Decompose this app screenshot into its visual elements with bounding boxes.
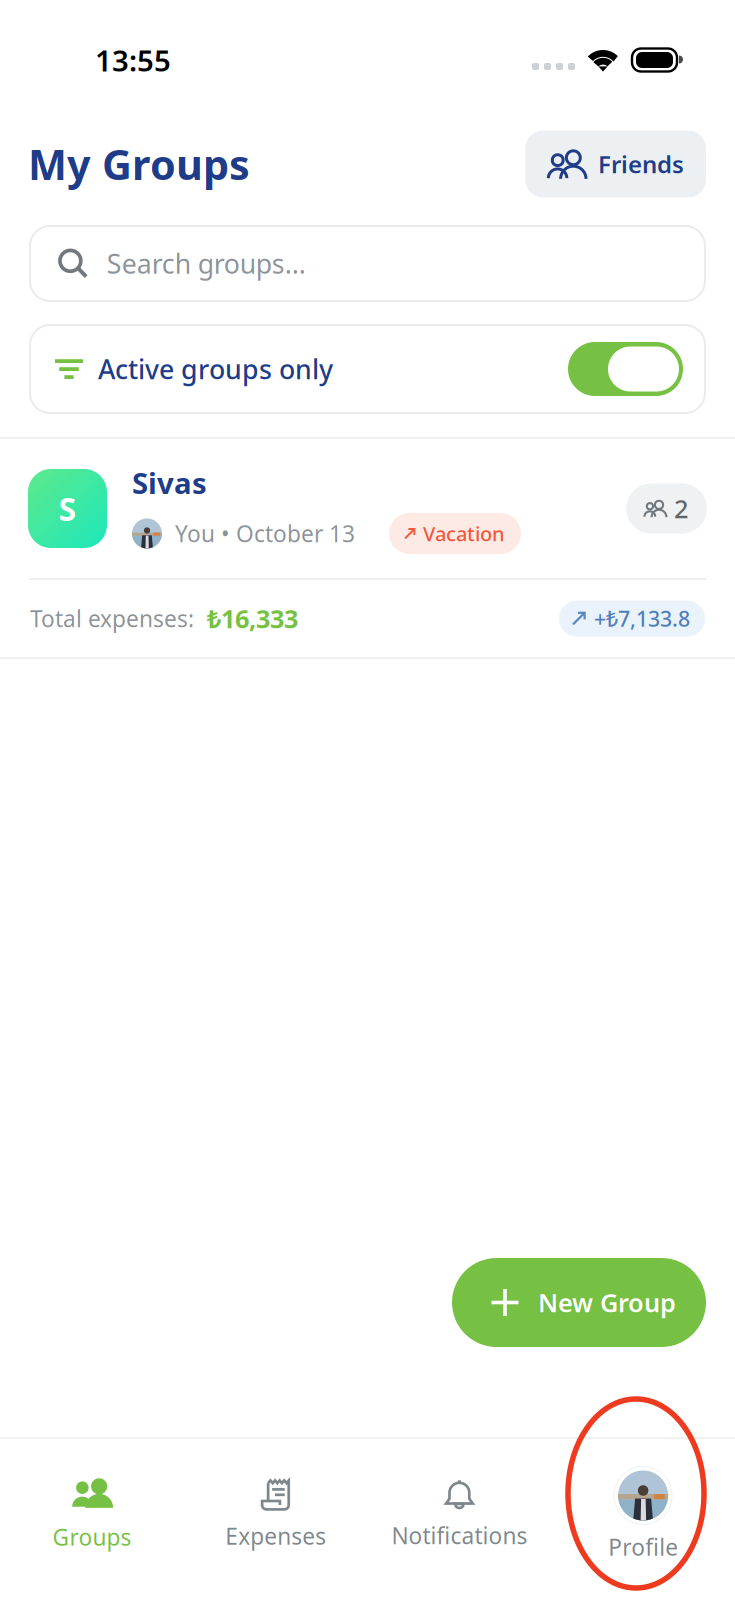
staticText: Friends xyxy=(598,148,684,180)
button[interactable]: Notifications xyxy=(367,1478,551,1551)
staticText: 13:55 xyxy=(95,40,171,79)
button[interactable]: S xyxy=(0,439,735,578)
staticText: Total expenses: xyxy=(30,603,194,633)
button[interactable]: Active groups only xyxy=(30,325,705,413)
button[interactable]: Profile xyxy=(551,1467,735,1562)
button[interactable]: Groups xyxy=(0,1477,184,1552)
staticText: Groups xyxy=(52,1522,131,1552)
staticText: 2 xyxy=(674,492,688,525)
staticText: My Groups xyxy=(28,137,250,191)
staticText: Sivas xyxy=(132,463,207,502)
button[interactable]: Search groups... xyxy=(30,226,705,301)
staticText: S xyxy=(58,487,76,530)
staticText: New Group xyxy=(538,1286,676,1319)
staticText: Vacation xyxy=(423,520,505,547)
staticText: Active groups only xyxy=(98,351,333,387)
button[interactable]: Friends xyxy=(525,130,706,197)
staticText: You • October 13 xyxy=(175,518,355,548)
staticText: Notifications xyxy=(391,1520,527,1551)
staticText: ₺16,333 xyxy=(207,602,298,635)
button[interactable]: New Group xyxy=(452,1258,706,1347)
staticText: Search groups... xyxy=(107,246,306,281)
staticText: +₺7,133.8 xyxy=(594,604,690,633)
button[interactable]: Expenses xyxy=(184,1478,368,1551)
staticText: Profile xyxy=(608,1532,678,1562)
staticText: Expenses xyxy=(225,1521,326,1551)
